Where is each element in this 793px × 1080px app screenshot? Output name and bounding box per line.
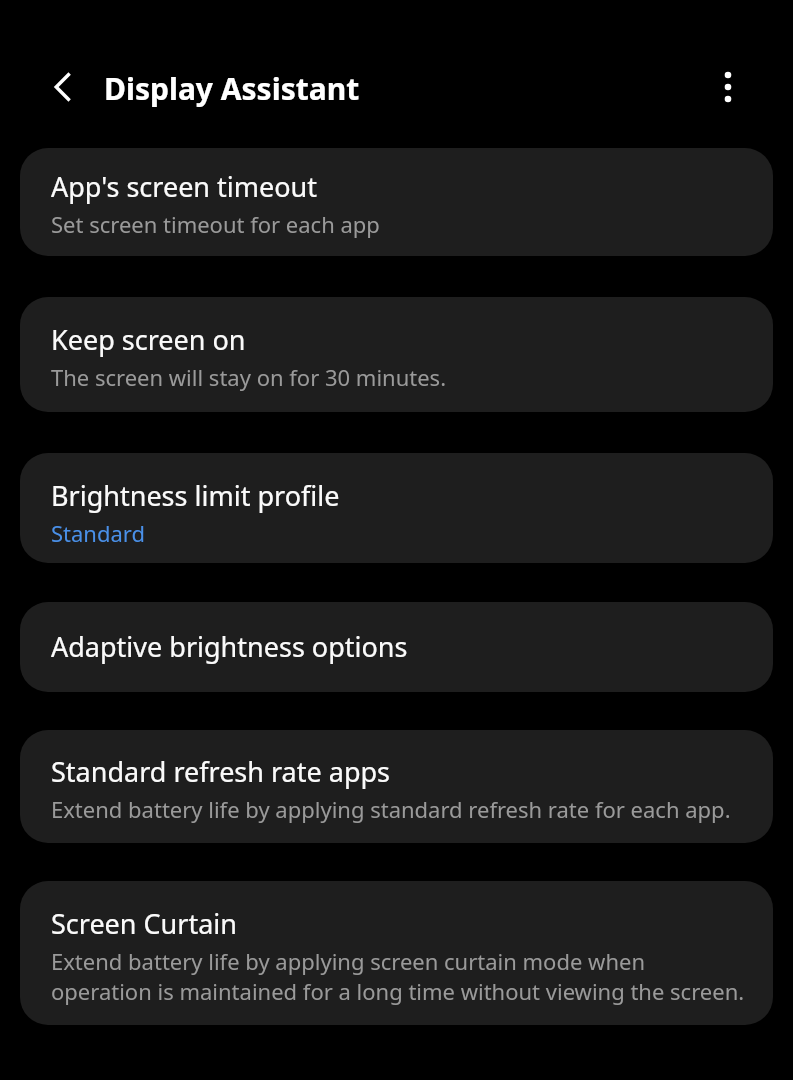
staticText: Display Assistant (104, 68, 360, 109)
staticText: Extend battery life by applying standard… (51, 794, 731, 824)
staticText: The screen will stay on for 30 minutes. (51, 362, 447, 392)
staticText: Standard (51, 518, 146, 548)
button[interactable]: Adaptive brightness options (20, 602, 773, 692)
staticText: Keep screen on (51, 323, 246, 357)
staticText: App's screen timeout (51, 170, 318, 204)
staticText: Adaptive brightness options (51, 630, 408, 664)
button[interactable]: Keep screen on (20, 297, 773, 412)
button[interactable]: More options (703, 62, 753, 112)
staticText: Brightness limit profile (51, 479, 340, 513)
button[interactable]: Brightness limit profile (20, 453, 773, 563)
staticText: Set screen timeout for each app (51, 209, 380, 239)
staticText: Standard refresh rate apps (51, 755, 391, 789)
button[interactable]: App's screen timeout (20, 148, 773, 256)
button[interactable]: Screen Curtain (20, 881, 773, 1025)
staticText: Screen Curtain (51, 907, 238, 941)
staticText: Extend battery life by applying screen c… (51, 946, 749, 1006)
button[interactable]: Back (38, 62, 88, 112)
button[interactable]: Standard refresh rate apps (20, 730, 773, 843)
